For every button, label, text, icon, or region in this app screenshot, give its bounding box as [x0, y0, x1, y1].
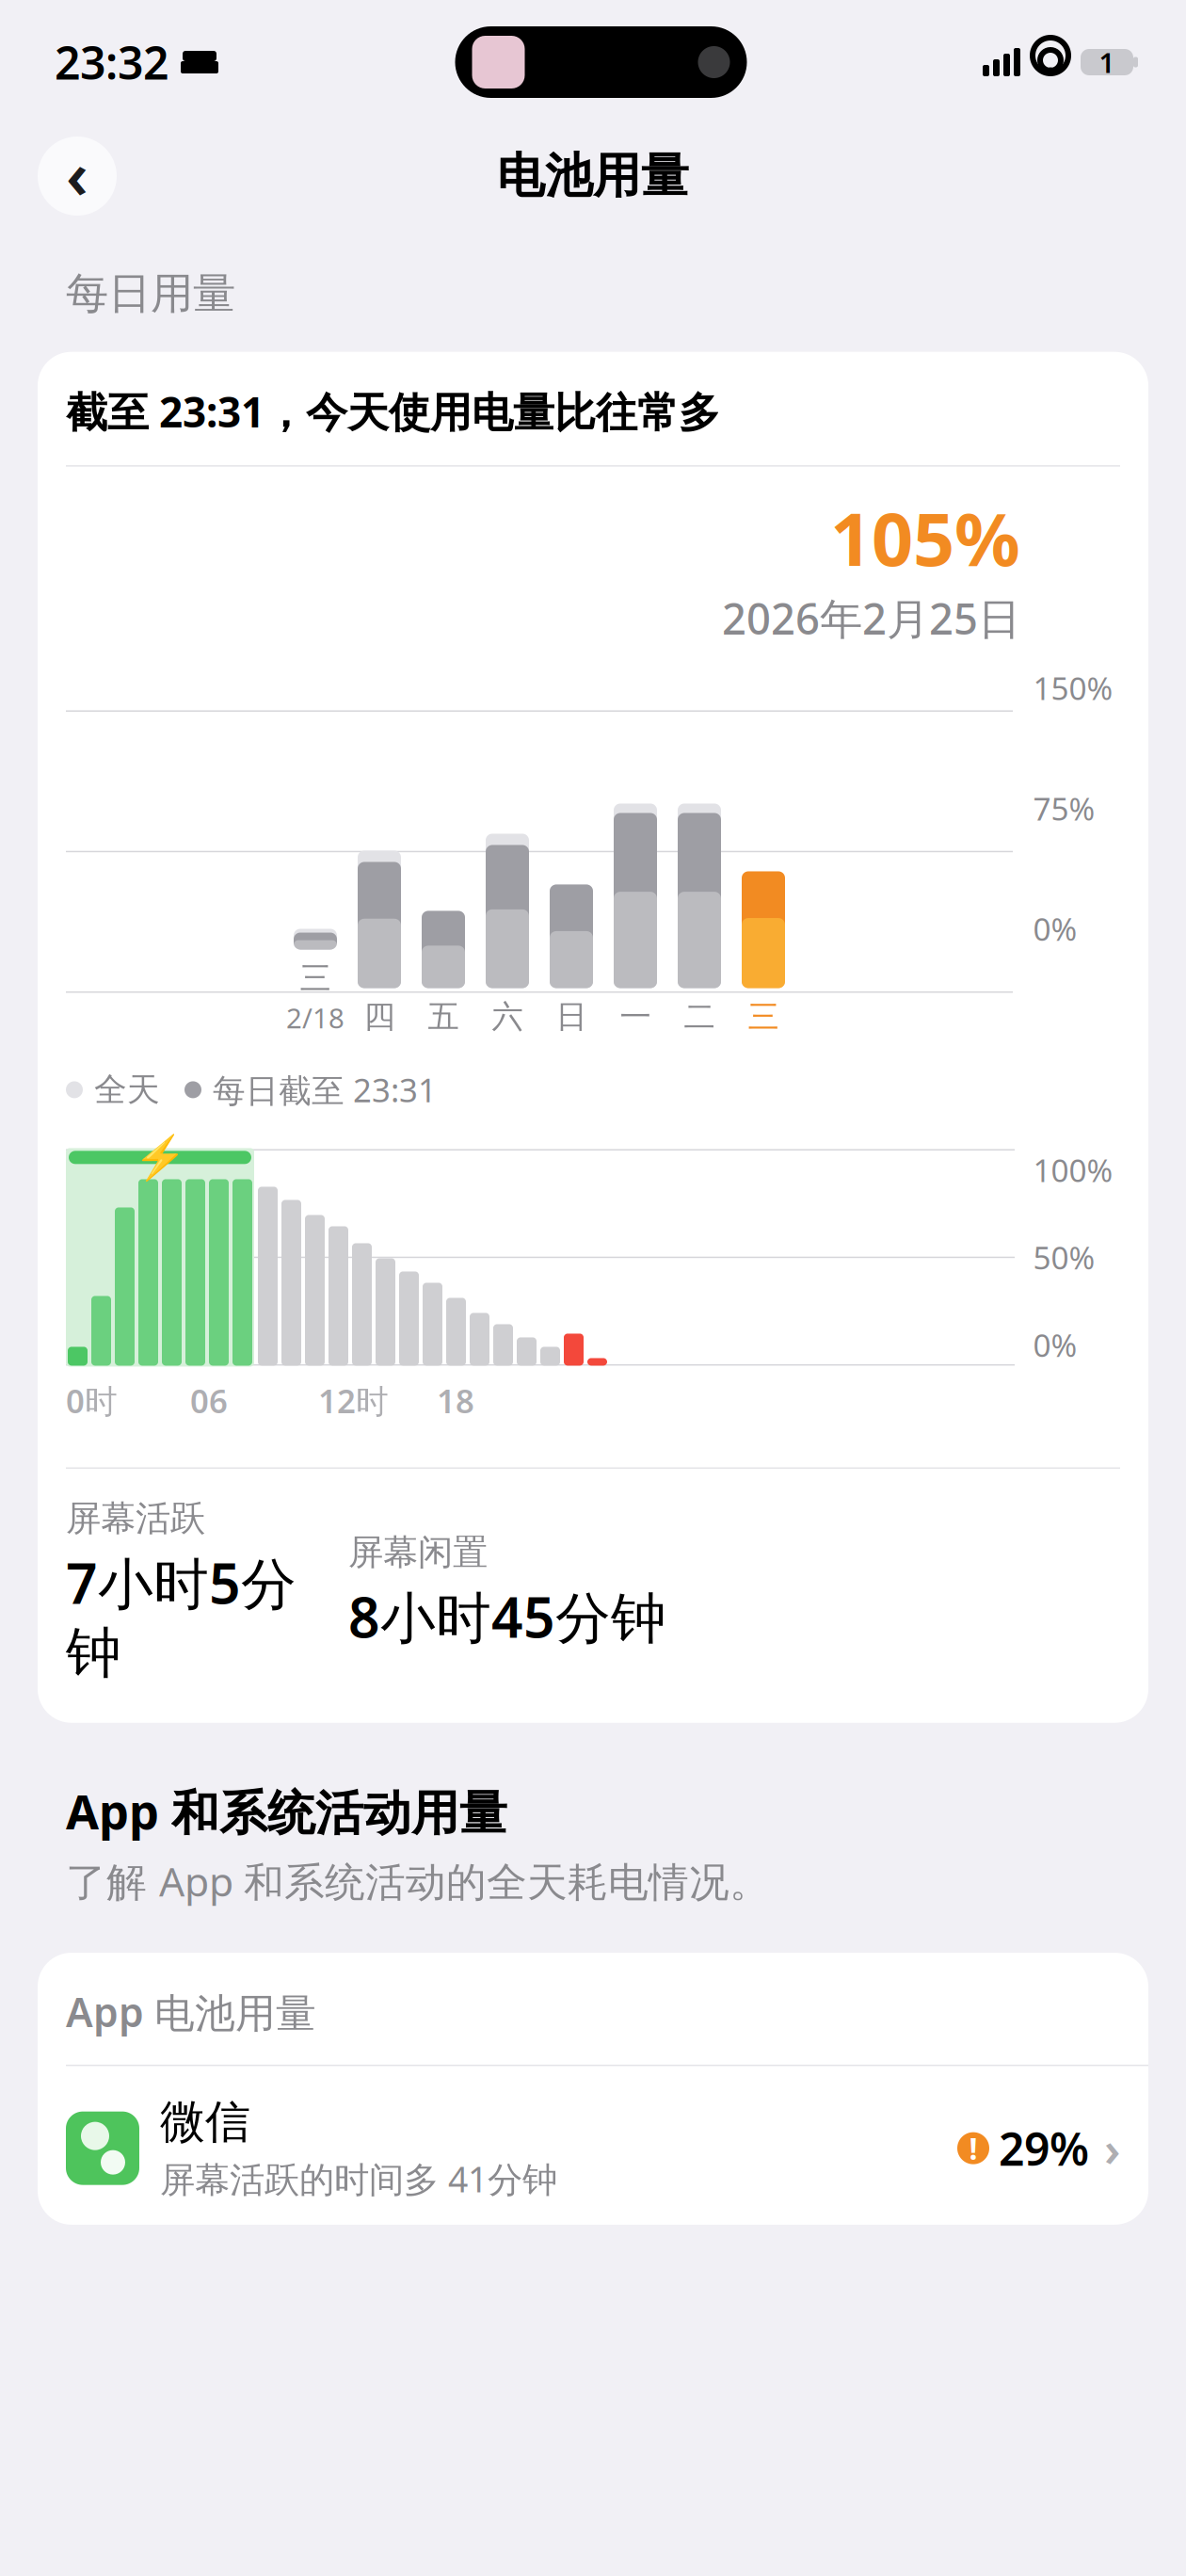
staticText: App 和系统活动用量	[66, 1779, 507, 1843]
staticText: 三	[748, 998, 779, 1036]
staticText: 1	[1099, 44, 1115, 80]
staticText: 屏幕闲置	[348, 1531, 488, 1574]
button[interactable]: 微信	[38, 2066, 1148, 2225]
staticText: 105%	[830, 489, 1020, 586]
staticText: 了解 App 和系统活动的全天耗电情况。	[66, 1854, 770, 1908]
staticText: 06	[190, 1379, 228, 1422]
staticText: ›	[1104, 2117, 1120, 2180]
staticText: 微信	[160, 2094, 250, 2150]
staticText: ⚡	[134, 1133, 186, 1182]
staticText: 全天	[94, 1070, 160, 1110]
staticText: 75%	[1033, 787, 1095, 829]
staticText: 六	[492, 998, 523, 1036]
button[interactable]: 返回	[38, 130, 117, 222]
staticText: 屏幕活跃的时间多 41分钟	[160, 2155, 557, 2202]
staticText: 2/18	[286, 999, 345, 1036]
staticText: 2026年2月25日	[722, 590, 1020, 646]
staticText: 每日截至 23:31	[213, 1068, 437, 1111]
staticText: 12时	[318, 1379, 389, 1422]
staticText: 电池用量	[497, 147, 689, 205]
staticText: 四	[364, 998, 395, 1036]
staticText: 100%	[1033, 1149, 1113, 1191]
staticText: 150%	[1033, 667, 1113, 709]
staticText: 三	[300, 959, 331, 997]
staticText: ‹	[66, 130, 88, 217]
staticText: 7小时5分钟	[66, 1546, 296, 1687]
staticText: !	[969, 2128, 978, 2168]
staticText: 日	[556, 998, 587, 1036]
staticText: 一	[620, 998, 651, 1036]
staticText: 29%	[999, 2118, 1089, 2178]
staticText: 五	[428, 998, 459, 1036]
staticText: 截至 23:31，今天使用电量比往常多	[66, 384, 720, 439]
staticText: 8小时45分钟	[348, 1580, 666, 1653]
staticText: 0%	[1033, 908, 1077, 950]
staticText: App 电池用量	[66, 1985, 316, 2038]
staticText: 二	[684, 998, 715, 1036]
staticText: 屏幕活跃	[66, 1497, 205, 1540]
staticText: 23:32	[55, 32, 168, 92]
staticText: 每日用量	[66, 267, 235, 320]
staticText: 0%	[1033, 1324, 1077, 1366]
staticText: 18	[437, 1379, 474, 1422]
staticText: 50%	[1033, 1236, 1095, 1278]
staticText: 0时	[66, 1379, 118, 1422]
